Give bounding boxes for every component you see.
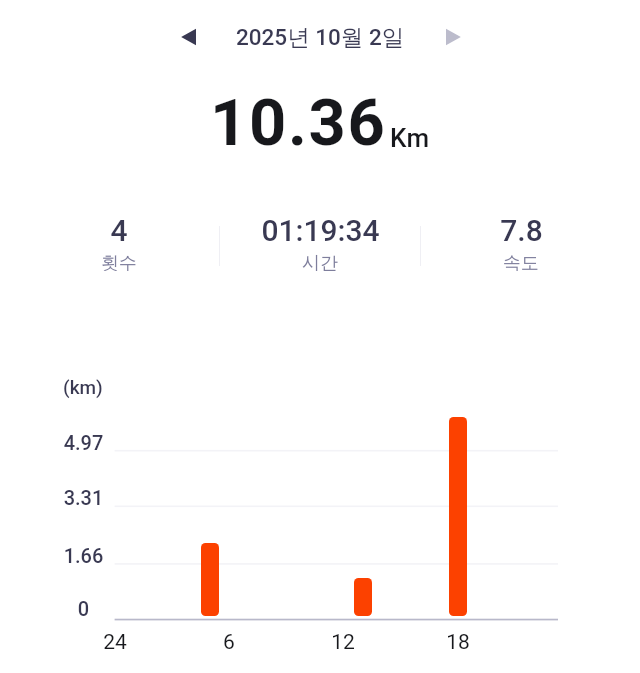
button[interactable]: 01:19:34	[220, 213, 420, 275]
button[interactable]: 7.8	[421, 213, 621, 275]
button[interactable]: Distance bar	[449, 417, 467, 616]
button[interactable]: 4	[19, 213, 219, 275]
staticText: 1.66	[57, 544, 110, 567]
staticText: 6	[199, 630, 259, 655]
staticText: 12	[313, 630, 373, 655]
button[interactable]: Distance bar	[201, 543, 219, 616]
button[interactable]: Distance bar	[354, 578, 372, 616]
staticText: 4.97	[57, 431, 110, 454]
staticText: (km)	[63, 376, 103, 398]
button[interactable]: Next day	[429, 14, 475, 60]
staticText: 시간	[302, 252, 338, 275]
staticText: 속도	[503, 252, 539, 275]
button[interactable]: 2025년 10월 2일	[236, 14, 405, 60]
staticText: 4	[110, 213, 128, 248]
staticText: 18	[428, 630, 488, 655]
staticText: 7.8	[500, 213, 543, 248]
staticText: 2025년 10월 2일	[236, 23, 405, 51]
staticText: Km	[390, 123, 430, 153]
staticText: 횟수	[101, 252, 137, 275]
button[interactable]: 10.36	[200, 92, 440, 164]
staticText: 3.31	[57, 486, 110, 509]
staticText: 0	[57, 597, 110, 620]
button[interactable]: Previous day	[166, 14, 212, 60]
staticText: 10.36	[210, 85, 387, 157]
staticText: 24	[85, 630, 145, 655]
staticText: 01:19:34	[261, 213, 380, 248]
